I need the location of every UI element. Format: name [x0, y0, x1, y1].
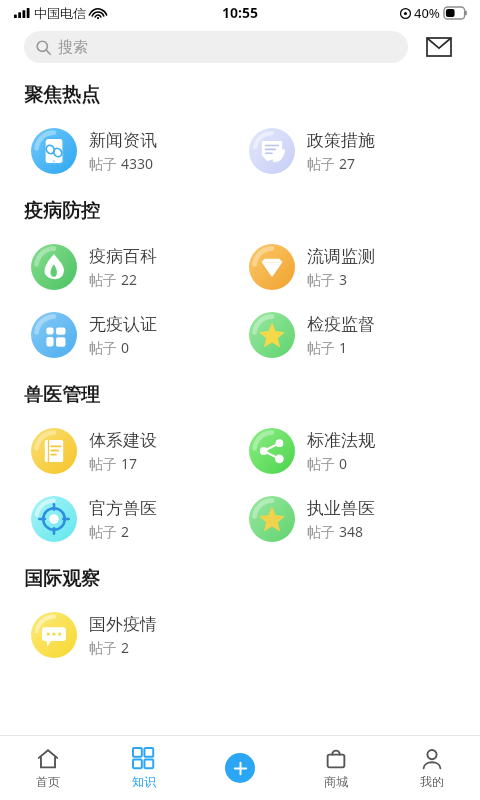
staticText: 搜索 [58, 38, 88, 57]
button[interactable]: Add [192, 736, 288, 800]
staticText: 聚焦热点 [24, 83, 100, 107]
button[interactable]: 疫病百科 [31, 233, 240, 301]
staticText: 10:55 [222, 3, 258, 22]
staticText: 疫病百科 [89, 246, 157, 267]
staticText: 国际观察 [24, 567, 100, 591]
staticText: 国外疫情 [89, 614, 157, 635]
staticText: 首页 [36, 774, 60, 789]
button[interactable]: 检疫监督 [249, 301, 480, 369]
staticText: 商城 [324, 774, 348, 789]
button[interactable]: 体系建设 [31, 417, 240, 485]
staticText: 2 [121, 522, 130, 541]
button[interactable]: 执业兽医 [249, 485, 480, 553]
staticText: 官方兽医 [89, 498, 157, 519]
button[interactable]: 新闻资讯 [31, 117, 240, 185]
staticText: 0 [339, 454, 348, 473]
staticText: 帖子 [307, 454, 339, 473]
staticText: 体系建设 [89, 430, 157, 451]
staticText: 新闻资讯 [89, 130, 157, 151]
staticText: 1 [339, 338, 348, 357]
staticText: 40% [414, 4, 440, 22]
staticText: 帖子 [307, 154, 339, 173]
staticText: 我的 [420, 774, 444, 789]
staticText: 4330 [121, 154, 154, 173]
staticText: 帖子 [89, 154, 121, 173]
staticText: 帖子 [89, 638, 121, 657]
staticText: 疫病防控 [24, 199, 100, 223]
staticText: 兽医管理 [24, 383, 100, 407]
staticText: 2 [121, 638, 130, 657]
button[interactable]: 标准法规 [249, 417, 480, 485]
staticText: 执业兽医 [307, 498, 375, 519]
button[interactable]: 流调监测 [249, 233, 480, 301]
staticText: 348 [339, 522, 364, 541]
button[interactable]: 国外疫情 [31, 601, 240, 669]
staticText: 帖子 [307, 270, 339, 289]
staticText: 检疫监督 [307, 314, 375, 335]
button[interactable]: 无疫认证 [31, 301, 240, 369]
staticText: 帖子 [307, 338, 339, 357]
button[interactable]: 我的 [384, 736, 480, 800]
staticText: 无疫认证 [89, 314, 157, 335]
staticText: 帖子 [89, 454, 121, 473]
button[interactable]: 首页 [0, 736, 96, 800]
staticText: 知识 [132, 774, 156, 789]
staticText: 帖子 [307, 522, 339, 541]
staticText: 帖子 [89, 338, 121, 357]
staticText: 帖子 [89, 522, 121, 541]
staticText: 中国电信 [34, 5, 86, 21]
staticText: 22 [121, 270, 138, 289]
button[interactable]: 搜索 [24, 31, 408, 63]
staticText: 27 [339, 154, 356, 173]
staticText: 政策措施 [307, 130, 375, 151]
staticText: 标准法规 [307, 430, 375, 451]
staticText: 17 [121, 454, 138, 473]
staticText: 帖子 [89, 270, 121, 289]
button[interactable]: 商城 [288, 736, 384, 800]
button[interactable]: 官方兽医 [31, 485, 240, 553]
button[interactable]: 政策措施 [249, 117, 480, 185]
button[interactable]: Messages [422, 30, 456, 64]
staticText: 0 [121, 338, 130, 357]
button[interactable]: 知识 [96, 736, 192, 800]
staticText: 流调监测 [307, 246, 375, 267]
staticText: 3 [339, 270, 348, 289]
